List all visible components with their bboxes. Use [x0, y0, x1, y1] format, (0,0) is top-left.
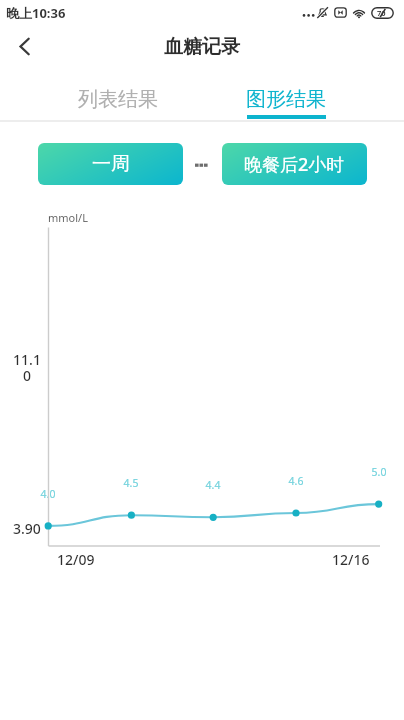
- staticText: 一周: [92, 152, 130, 176]
- button[interactable]: 一周: [38, 143, 183, 185]
- staticText: 血糖记录: [164, 35, 240, 59]
- staticText: 列表结果: [78, 87, 158, 112]
- staticText: 70: [377, 8, 386, 18]
- staticText: 晚餐后2小时: [244, 152, 345, 177]
- staticText: 4.4: [202, 478, 224, 492]
- staticText: 0: [13, 366, 41, 385]
- button[interactable]: 晚餐后2小时: [222, 143, 367, 185]
- button[interactable]: Back: [3, 25, 45, 67]
- button[interactable]: 图形结果: [202, 72, 370, 120]
- staticText: 晚上10:36: [6, 4, 66, 22]
- staticText: 图形结果: [246, 87, 326, 112]
- button[interactable]: 列表结果: [34, 72, 202, 120]
- staticText: mmol/L: [48, 210, 88, 225]
- staticText: 4.6: [285, 474, 307, 488]
- staticText: 12/09: [57, 550, 95, 569]
- staticText: 5.0: [368, 465, 390, 479]
- staticText: 12/16: [332, 550, 370, 569]
- staticText: 4.5: [120, 476, 142, 490]
- staticText: 3.90: [13, 519, 41, 538]
- staticText: 11.1: [13, 350, 41, 369]
- staticText: 4.0: [37, 487, 59, 501]
